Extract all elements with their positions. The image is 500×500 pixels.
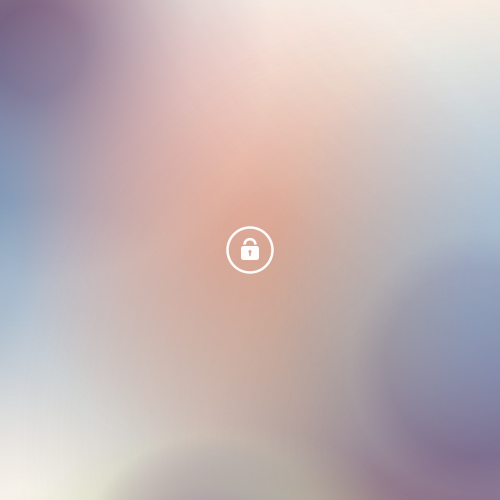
button[interactable]: Locked (220, 220, 280, 280)
